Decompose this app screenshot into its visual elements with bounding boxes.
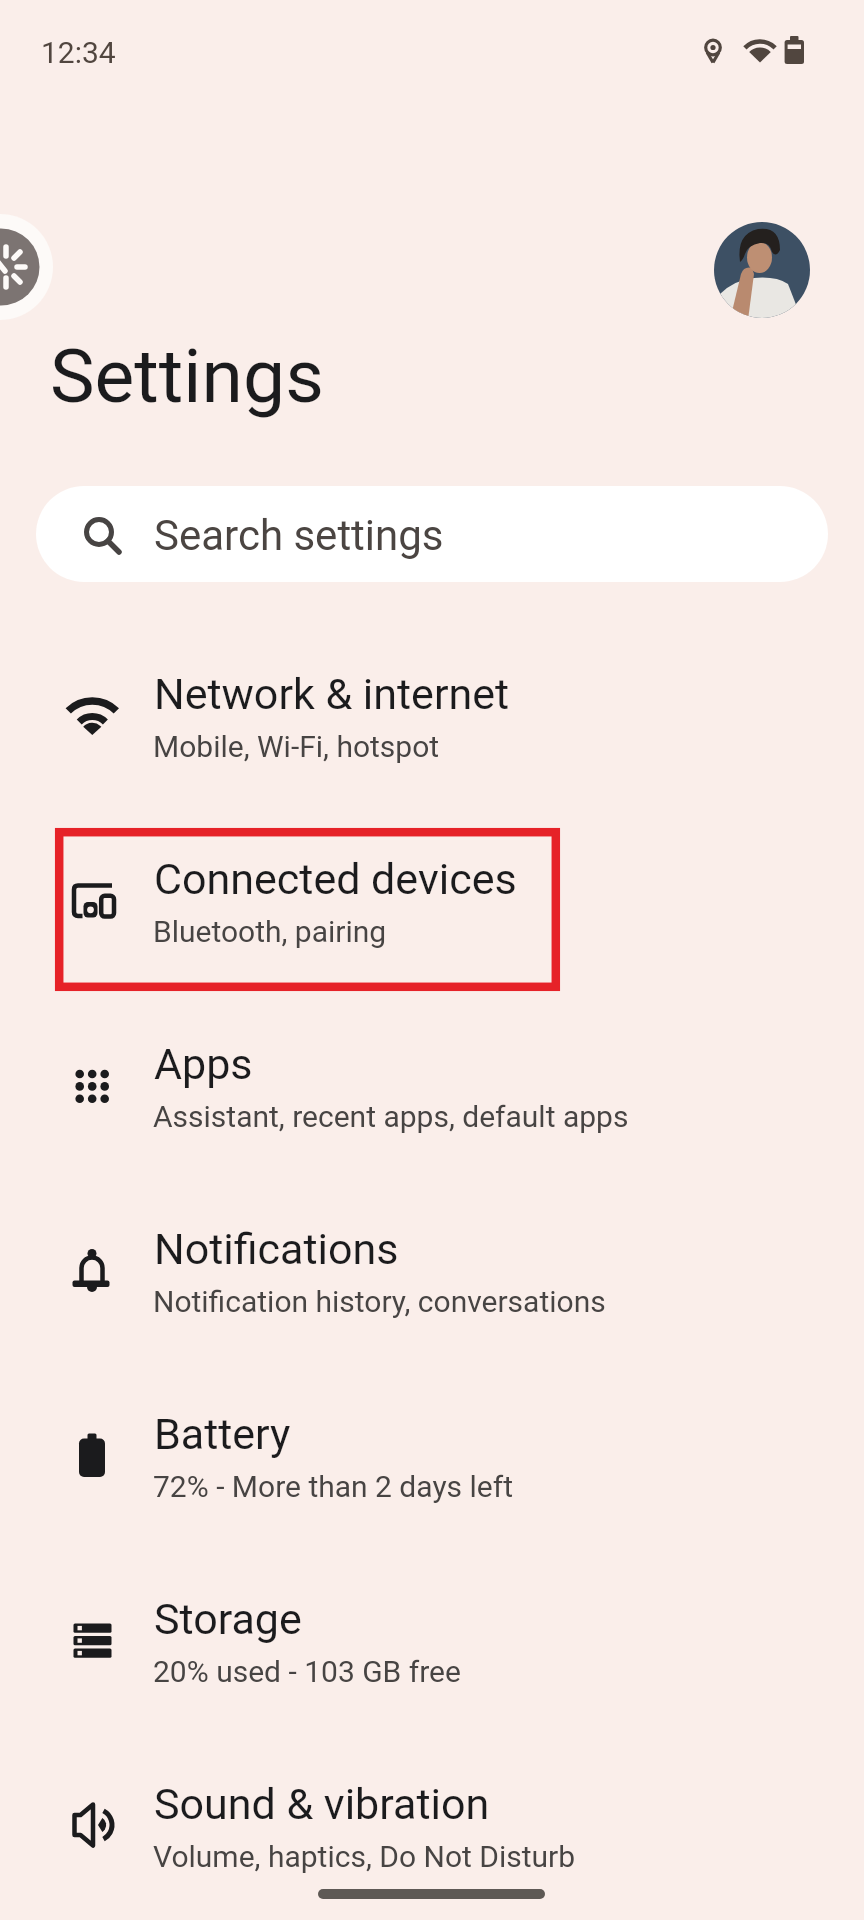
staticText: 12:34 bbox=[41, 35, 116, 70]
staticText: Apps bbox=[154, 1039, 253, 1089]
staticText: Sound & vibration bbox=[154, 1779, 490, 1829]
button[interactable] bbox=[0, 628, 864, 813]
button[interactable]: Search settings bbox=[36, 486, 828, 582]
staticText: Assistant, recent apps, default apps bbox=[153, 1099, 629, 1134]
staticText: Network & internet bbox=[154, 669, 510, 719]
staticText: 20% used - 103 GB free bbox=[153, 1654, 461, 1689]
staticText: Volume, haptics, Do Not Disturb bbox=[153, 1839, 576, 1874]
staticText: Mobile, Wi-Fi, hotspot bbox=[153, 729, 440, 764]
staticText: Bluetooth, pairing bbox=[153, 914, 387, 949]
staticText: Storage bbox=[154, 1594, 302, 1644]
staticText: 72% - More than 2 days left bbox=[153, 1469, 513, 1504]
staticText: Settings bbox=[50, 332, 324, 420]
button[interactable] bbox=[0, 1738, 864, 1920]
button[interactable] bbox=[714, 222, 810, 318]
button[interactable] bbox=[0, 1183, 864, 1368]
staticText: Notification history, conversations bbox=[153, 1284, 606, 1319]
staticText: Battery bbox=[154, 1409, 291, 1459]
staticText: Connected devices bbox=[154, 854, 517, 904]
button[interactable] bbox=[0, 1553, 864, 1738]
button[interactable] bbox=[0, 998, 864, 1183]
button[interactable] bbox=[0, 813, 864, 998]
button[interactable] bbox=[0, 1368, 864, 1553]
staticText: Search settings bbox=[154, 511, 444, 560]
staticText: Notifications bbox=[154, 1224, 399, 1274]
